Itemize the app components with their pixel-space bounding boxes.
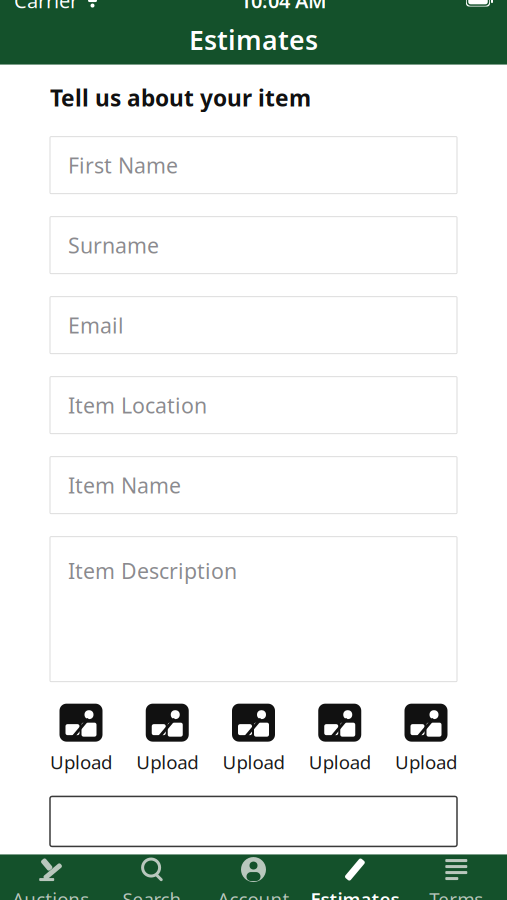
- staticText: Item Name: [68, 471, 181, 499]
- button[interactable]: First Name: [50, 137, 457, 194]
- staticText: First Name: [68, 151, 178, 179]
- staticText: Carrier: [14, 0, 78, 14]
- staticText: Email: [68, 311, 124, 339]
- button[interactable]: Upload: [46, 704, 116, 774]
- staticText: Estimates: [310, 887, 399, 900]
- button[interactable]: Upload: [132, 704, 202, 774]
- staticText: Tell us about your item: [50, 83, 311, 113]
- staticText: Estimates: [189, 22, 318, 57]
- button[interactable]: Auctions: [0, 854, 101, 900]
- staticText: Upload: [136, 750, 198, 774]
- button[interactable]: Item Location: [50, 377, 457, 434]
- staticText: Item Location: [68, 391, 207, 419]
- staticText: Item Description: [68, 557, 237, 585]
- button[interactable]: Upload: [218, 704, 288, 774]
- staticText: Upload: [395, 750, 457, 774]
- button[interactable]: Item Name: [50, 457, 457, 514]
- staticText: Auctions: [12, 887, 89, 900]
- button[interactable]: Upload: [305, 704, 375, 774]
- staticText: Upload: [50, 750, 112, 774]
- staticText: Terms: [429, 887, 483, 900]
- button[interactable]: Account: [203, 854, 304, 900]
- staticText: Upload: [309, 750, 371, 774]
- button[interactable]: Upload: [391, 704, 461, 774]
- staticText: 10:04 AM: [240, 0, 327, 14]
- button[interactable]: Estimates: [304, 854, 406, 900]
- button[interactable]: Terms: [406, 854, 507, 900]
- staticText: Search: [123, 887, 182, 900]
- button[interactable]: Surname: [50, 217, 457, 274]
- button[interactable]: [50, 796, 457, 846]
- button[interactable]: Search: [101, 854, 203, 900]
- staticText: Account: [217, 887, 289, 900]
- button[interactable]: Email: [50, 297, 457, 354]
- staticText: Upload: [222, 750, 284, 774]
- staticText: Surname: [68, 231, 159, 259]
- button[interactable]: Item Description: [50, 537, 457, 682]
